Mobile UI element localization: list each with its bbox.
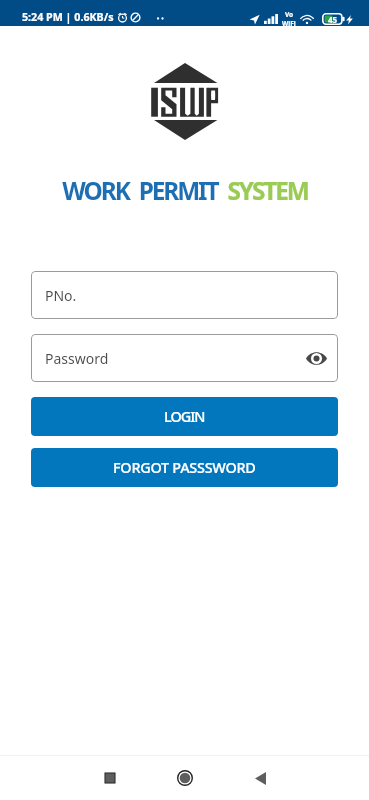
other: Show password [306,351,327,366]
staticText: WiFi [282,19,296,28]
button[interactable]: Back [236,756,284,800]
staticText: Password [45,349,109,368]
button[interactable]: Home [161,756,209,800]
staticText: 5:24 PM | 0.6KB/s [22,10,114,25]
staticText: LOGIN [164,407,205,427]
button[interactable]: FORGOT PASSSWORD [31,448,338,487]
staticText: FORGOT PASSSWORD [113,458,256,478]
staticText: Vo [285,10,294,19]
button[interactable]: PNo. [31,271,338,319]
staticText: WORK PERMIT SYSTEM [62,174,308,207]
button[interactable]: Recents [86,756,134,800]
button[interactable]: LOGIN [31,397,338,436]
button[interactable]: Password [31,334,338,382]
staticText: 45 [328,14,338,25]
staticText: PNo. [45,286,77,305]
